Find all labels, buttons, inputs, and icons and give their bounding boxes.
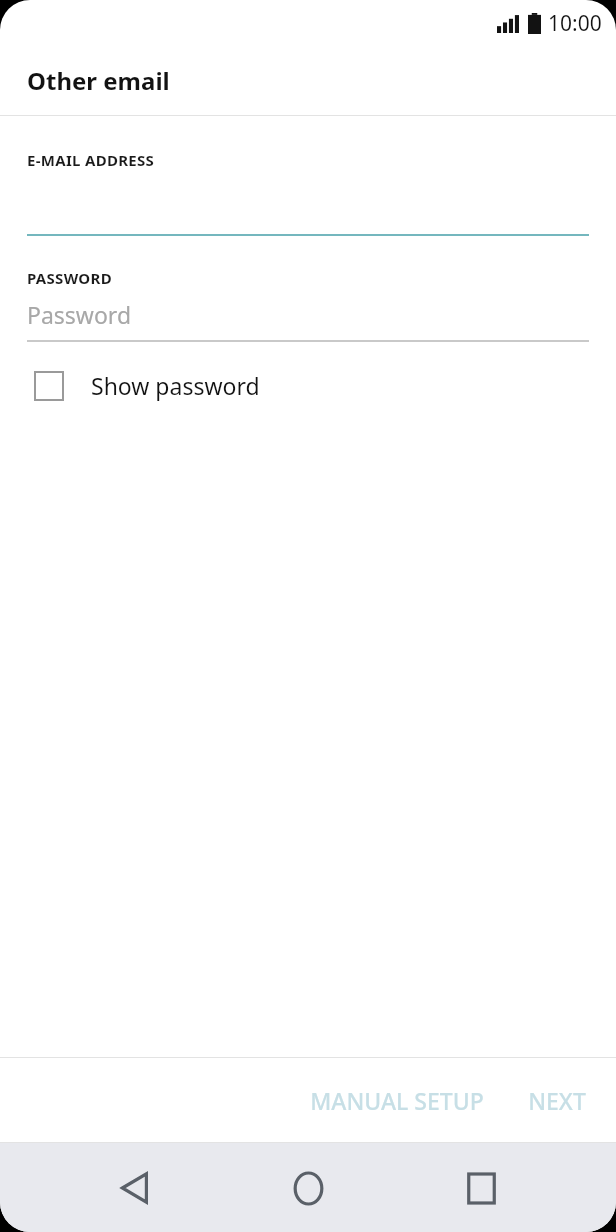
button[interactable]: MANUAL SETUP [296,1073,498,1128]
staticText: Other email [27,64,170,97]
button[interactable]: Show password [27,370,589,401]
staticText: MANUAL SETUP [310,1085,484,1116]
staticText: NEXT [528,1085,586,1116]
staticText: 10:00 [548,9,602,38]
button[interactable]: NEXT [514,1073,600,1128]
button[interactable]: Home [270,1150,346,1226]
button[interactable]: Recent apps [443,1150,519,1226]
staticText: E-MAIL ADDRESS [27,150,155,170]
button[interactable]: Back [97,1150,173,1226]
staticText: Password [27,299,132,330]
button[interactable]: Password [27,288,589,340]
staticText: Show password [91,370,260,401]
staticText: PASSWORD [27,268,112,288]
